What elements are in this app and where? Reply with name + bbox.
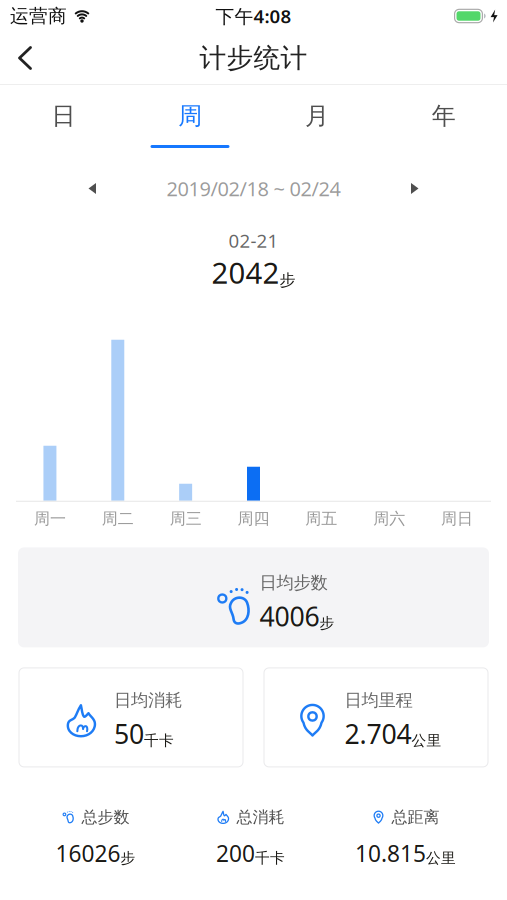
staticText: 16026步 — [55, 838, 135, 868]
staticText: 日均消耗 — [114, 689, 182, 711]
staticText: 4006步 — [259, 598, 334, 634]
staticText: 年 — [432, 101, 456, 131]
staticText: 日 — [51, 101, 75, 131]
staticText: 200千卡 — [216, 838, 285, 868]
staticText: 周一 — [34, 509, 66, 528]
staticText: 2019/02/18 ~ 02/24 — [166, 175, 340, 202]
button[interactable]: 日 — [0, 94, 127, 138]
staticText: 02-21 — [228, 228, 278, 253]
staticText: 计步统计 — [199, 42, 307, 74]
staticText: 50千卡 — [114, 716, 174, 751]
staticText: 2042步 — [211, 253, 295, 292]
staticText: 周 — [178, 101, 202, 131]
button[interactable]: Previous week — [78, 173, 106, 204]
button[interactable]: 周 — [127, 94, 254, 138]
staticText: 2.704公里 — [344, 716, 441, 751]
staticText: 10.815公里 — [355, 838, 456, 868]
staticText: 日均步数 — [259, 572, 327, 593]
staticText: 月 — [305, 101, 329, 131]
staticText: 总消耗 — [236, 807, 284, 827]
staticText: 总步数 — [81, 807, 129, 827]
staticText: 周六 — [373, 509, 405, 528]
staticText: 周四 — [237, 509, 269, 528]
staticText: 日均里程 — [344, 689, 412, 711]
staticText: 周三 — [170, 509, 202, 528]
button[interactable]: Next week — [401, 173, 429, 204]
button[interactable]: 月 — [253, 94, 380, 138]
staticText: 周二 — [102, 509, 134, 528]
staticText: 周日 — [441, 509, 473, 528]
staticText: 运营商 — [10, 4, 67, 27]
button[interactable]: Back — [0, 32, 33, 84]
staticText: 总距离 — [391, 807, 439, 827]
button[interactable]: 年 — [380, 94, 507, 138]
staticText: 周五 — [305, 509, 337, 528]
staticText: 下午4:08 — [215, 4, 291, 28]
